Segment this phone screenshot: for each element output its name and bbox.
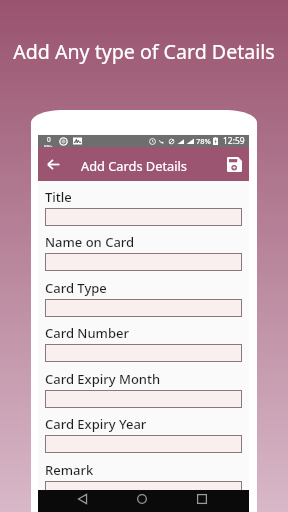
staticText: Card Type (45, 279, 107, 297)
button[interactable] (45, 390, 242, 408)
staticText: Card Expiry Year (45, 415, 147, 433)
button[interactable]: Back (71, 488, 93, 510)
staticText: Name on Card (45, 233, 135, 251)
button[interactable]: Recents (191, 488, 213, 510)
button[interactable]: Home (131, 488, 153, 510)
staticText: Card Expiry Month (45, 370, 161, 388)
button[interactable] (45, 208, 242, 226)
staticText: 0 (47, 135, 51, 144)
button[interactable] (45, 435, 242, 453)
staticText: 78% (196, 136, 211, 146)
staticText: 12:59 (223, 135, 245, 147)
button[interactable] (45, 481, 242, 499)
button[interactable] (45, 253, 242, 271)
button[interactable]: Back (38, 149, 68, 179)
button[interactable] (45, 299, 242, 317)
staticText: Remark (45, 461, 94, 479)
staticText: Add Any type of Card Details (0, 38, 288, 65)
staticText: Card Number (45, 324, 129, 342)
staticText: KB/s (44, 144, 53, 147)
button[interactable]: Save (219, 149, 249, 179)
staticText: Title (45, 188, 72, 206)
staticText: Add Cards Details (81, 157, 187, 174)
button[interactable] (45, 344, 242, 362)
